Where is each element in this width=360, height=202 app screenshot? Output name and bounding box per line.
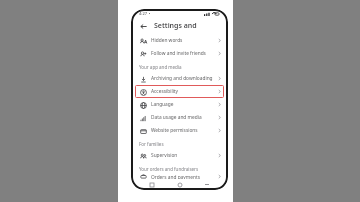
button[interactable]: Language <box>132 98 227 111</box>
button[interactable]: Supervision <box>132 149 227 162</box>
button[interactable]: Hidden words <box>132 34 227 47</box>
staticText: Your app and media <box>139 64 182 70</box>
button[interactable]: Recents <box>145 179 159 190</box>
staticText: 4:27 <box>139 11 147 16</box>
staticText: Archiving and downloading <box>151 75 218 82</box>
button[interactable]: Orders and payments <box>132 174 227 179</box>
staticText: Website permissions <box>151 127 218 134</box>
staticText: Accessibility <box>151 88 218 95</box>
staticText: Settings and privacy <box>154 21 221 31</box>
staticText: Data usage and media quality <box>151 114 218 121</box>
button[interactable]: Accessibility <box>132 85 227 98</box>
button[interactable]: Archiving and downloading <box>132 72 227 85</box>
button[interactable]: Data usage and media quality <box>132 111 227 124</box>
staticText: For families <box>139 141 164 147</box>
staticText: Follow and invite friends <box>151 50 218 57</box>
button[interactable]: Home <box>173 179 187 190</box>
staticText: Language <box>151 101 218 108</box>
staticText: Your orders and fundraisers <box>139 166 199 172</box>
button[interactable]: Follow and invite friends <box>132 47 227 60</box>
button[interactable]: Website permissions <box>132 124 227 137</box>
staticText: Supervision <box>151 152 218 159</box>
button[interactable]: Back <box>138 21 149 32</box>
staticText: Hidden words <box>151 37 218 44</box>
staticText: Orders and payments <box>151 174 218 179</box>
button[interactable]: Back <box>200 179 214 190</box>
